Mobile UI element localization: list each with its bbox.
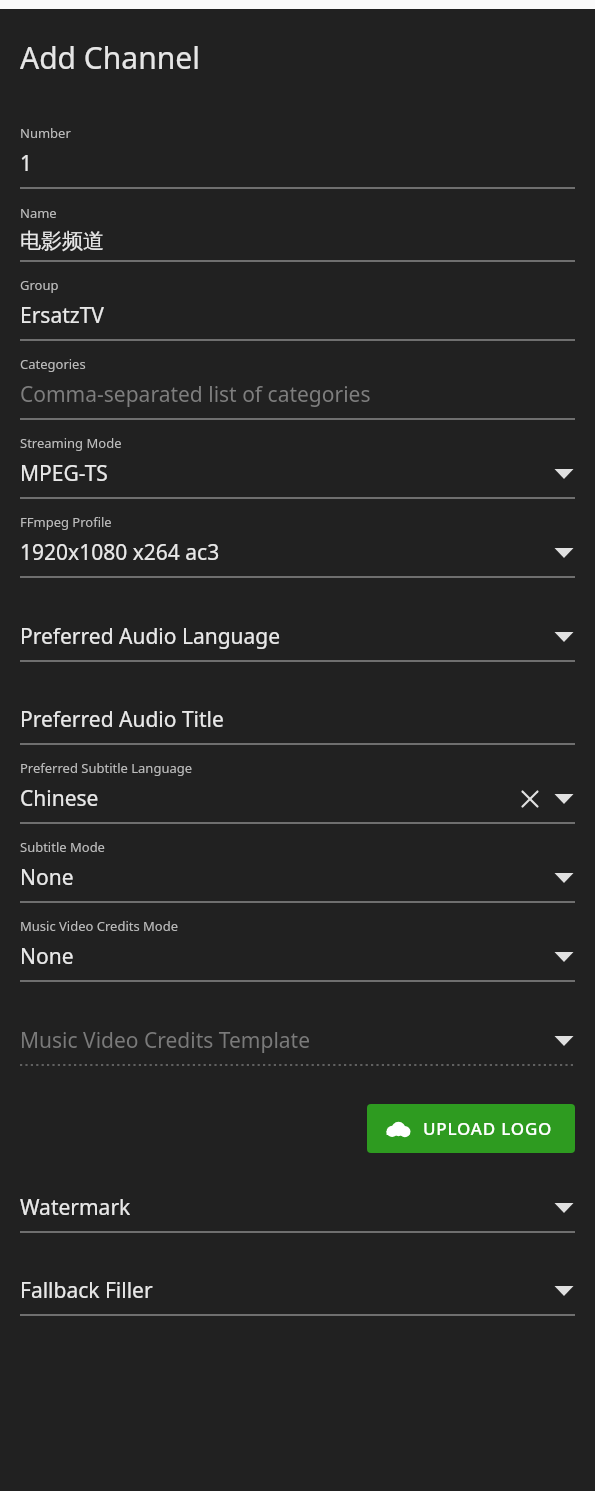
staticText: UPLOAD LOGO — [423, 1117, 553, 1140]
other: Open Music Video Credits Template — [553, 1034, 575, 1048]
staticText: Name — [20, 204, 57, 222]
button[interactable]: Preferred Audio Language — [20, 622, 575, 662]
other: Open Preferred Audio Language — [553, 630, 575, 644]
button[interactable]: Group — [20, 276, 575, 341]
staticText: Fallback Filler — [20, 1276, 153, 1305]
staticText: 电影频道 — [20, 228, 104, 254]
staticText: Watermark — [20, 1193, 131, 1222]
button[interactable]: Categories — [20, 355, 575, 420]
staticText: Preferred Subtitle Language — [20, 759, 193, 777]
other: Open Fallback Filler — [553, 1284, 575, 1298]
staticText: Group — [20, 276, 59, 294]
staticText: Number — [20, 124, 71, 142]
staticText: Music Video Credits Template — [20, 1026, 311, 1055]
staticText: ErsatzTV — [20, 301, 104, 330]
other: Clear — [519, 788, 541, 810]
staticText: Subtitle Mode — [20, 838, 105, 856]
button[interactable]: Music Video Credits Mode — [20, 917, 575, 982]
button[interactable]: Number — [20, 124, 575, 189]
staticText: Add Channel — [20, 37, 200, 78]
staticText: Music Video Credits Mode — [20, 917, 179, 935]
button[interactable]: FFmpeg Profile — [20, 513, 575, 578]
button[interactable]: Subtitle Mode — [20, 838, 575, 903]
staticText: None — [20, 942, 74, 971]
staticText: 1920x1080 x264 ac3 — [20, 538, 220, 567]
other: Open Watermark — [553, 1201, 575, 1215]
other: Open Subtitle Mode — [553, 871, 575, 885]
staticText: None — [20, 863, 74, 892]
button[interactable]: Watermark — [20, 1193, 575, 1233]
other: Open Preferred Subtitle Language — [553, 792, 575, 806]
button[interactable]: UPLOAD LOGO — [367, 1104, 575, 1153]
staticText: 1 — [20, 149, 33, 178]
button[interactable]: Preferred Subtitle Language — [20, 759, 575, 824]
staticText: Preferred Audio Title — [20, 705, 224, 734]
staticText: MPEG-TS — [20, 459, 108, 488]
staticText: Categories — [20, 355, 86, 373]
button[interactable]: Fallback Filler — [20, 1276, 575, 1316]
staticText: Chinese — [20, 784, 99, 813]
button[interactable]: Name — [20, 204, 575, 262]
button[interactable]: Preferred Audio Title — [20, 705, 575, 745]
other: Open Music Video Credits Mode — [553, 950, 575, 964]
staticText: Preferred Audio Language — [20, 622, 281, 651]
staticText: FFmpeg Profile — [20, 513, 112, 531]
button[interactable]: Music Video Credits Template — [20, 1026, 575, 1066]
staticText: Streaming Mode — [20, 434, 122, 452]
staticText: Comma-separated list of categories — [20, 380, 371, 409]
other: Open Streaming Mode — [553, 467, 575, 481]
other: Open FFmpeg Profile — [553, 546, 575, 560]
button[interactable]: Streaming Mode — [20, 434, 575, 499]
